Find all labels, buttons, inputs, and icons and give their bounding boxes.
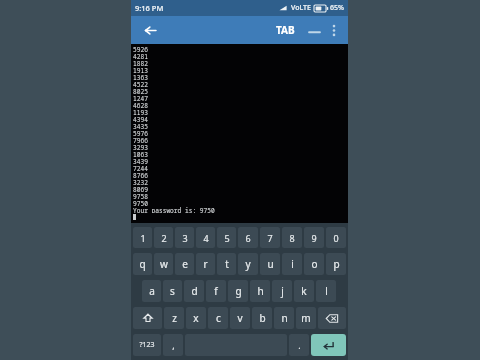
staticText: 4628	[133, 101, 148, 108]
staticText: f	[214, 284, 218, 298]
staticText: 0	[333, 232, 339, 244]
staticText: d	[191, 284, 198, 298]
staticText: 7	[267, 232, 273, 244]
staticText: i	[291, 257, 294, 271]
button[interactable]: d	[184, 280, 204, 302]
button[interactable]: h	[250, 280, 270, 302]
button[interactable]: a	[142, 280, 161, 302]
button[interactable]: v	[230, 307, 250, 329]
staticText: 1193	[133, 108, 148, 115]
button[interactable]: q	[133, 253, 152, 275]
staticText: 5926	[133, 45, 148, 52]
staticText: o	[311, 257, 318, 271]
staticText: TAB	[276, 23, 295, 37]
staticText: v	[237, 311, 243, 325]
button[interactable]: e	[175, 253, 194, 275]
staticText: 3232	[133, 178, 148, 185]
button[interactable]: p	[326, 253, 346, 275]
staticText: w	[160, 257, 168, 271]
button[interactable]: 7	[260, 227, 280, 248]
staticText: r	[203, 257, 208, 271]
button[interactable]: u	[260, 253, 280, 275]
button[interactable]: Back	[139, 19, 161, 41]
button[interactable]: n	[274, 307, 294, 329]
button[interactable]: 1	[133, 227, 152, 248]
staticText: 1363	[133, 73, 148, 80]
button[interactable]: c	[208, 307, 228, 329]
button[interactable]: 9	[304, 227, 324, 248]
staticText: 8025	[133, 87, 148, 94]
button[interactable]: r	[196, 253, 215, 275]
staticText: n	[281, 311, 288, 325]
staticText: 2	[161, 232, 167, 244]
staticText: 6	[245, 232, 251, 244]
staticText: c	[216, 311, 221, 325]
button[interactable]: .	[289, 334, 309, 356]
staticText: ?123	[139, 340, 155, 350]
staticText: ,	[172, 339, 175, 351]
button[interactable]: Backspace	[318, 307, 346, 329]
staticText: 1882	[133, 59, 148, 66]
staticText: 3	[182, 232, 188, 244]
staticText: z	[172, 311, 177, 325]
button[interactable]: 4	[196, 227, 215, 248]
staticText: y	[245, 257, 251, 271]
button[interactable]: 3	[175, 227, 194, 248]
button[interactable]: TAB	[273, 23, 298, 37]
staticText: 4281	[133, 52, 148, 59]
staticText: b	[259, 311, 266, 325]
button[interactable]: i	[282, 253, 302, 275]
staticText: 3435	[133, 122, 148, 129]
button[interactable]: Enter	[311, 334, 346, 356]
staticText: p	[333, 257, 340, 271]
staticText: 3293	[133, 143, 148, 150]
staticText: l	[325, 284, 328, 298]
button[interactable]: 2	[154, 227, 173, 248]
button[interactable]: g	[228, 280, 248, 302]
staticText: 7244	[133, 164, 148, 171]
staticText: 5976	[133, 129, 148, 136]
button[interactable]: y	[238, 253, 258, 275]
staticText: 1	[140, 232, 146, 244]
staticText: h	[257, 284, 264, 298]
staticText: 9758	[133, 192, 148, 199]
staticText: 1063	[133, 150, 148, 157]
button[interactable]: x	[186, 307, 206, 329]
button[interactable]: b	[252, 307, 272, 329]
button[interactable]: k	[294, 280, 314, 302]
staticText: e	[182, 257, 188, 271]
button[interactable]: w	[154, 253, 173, 275]
button[interactable]: o	[304, 253, 324, 275]
staticText: 1913	[133, 66, 148, 73]
button[interactable]: z	[164, 307, 184, 329]
button[interactable]: t	[217, 253, 236, 275]
staticText: 9	[311, 232, 317, 244]
button[interactable]: l	[316, 280, 336, 302]
button[interactable]: s	[163, 280, 182, 302]
staticText: 8	[289, 232, 295, 244]
staticText: 4	[203, 232, 209, 244]
button[interactable]: Minimize	[304, 20, 324, 40]
staticText: 4522	[133, 80, 148, 87]
staticText: g	[235, 284, 242, 298]
button[interactable]: 5	[217, 227, 236, 248]
staticText: Your password is: 9750	[133, 206, 215, 213]
button[interactable]: 6	[238, 227, 258, 248]
staticText: s	[170, 284, 175, 298]
button[interactable]: m	[296, 307, 316, 329]
staticText: t	[225, 257, 229, 271]
staticText: 9:16 PM	[135, 3, 164, 13]
staticText: 8069	[133, 185, 148, 192]
button[interactable]: 0	[326, 227, 346, 248]
button[interactable]: Shift	[133, 307, 162, 329]
button[interactable]: 8	[282, 227, 302, 248]
button[interactable]: More options	[324, 20, 344, 40]
staticText: 5	[224, 232, 230, 244]
button[interactable]: ,	[163, 334, 183, 356]
staticText: a	[149, 284, 155, 298]
button[interactable]: f	[206, 280, 226, 302]
button[interactable]: j	[272, 280, 292, 302]
staticText: 1247	[133, 94, 148, 101]
button[interactable]: ?123	[133, 334, 161, 356]
